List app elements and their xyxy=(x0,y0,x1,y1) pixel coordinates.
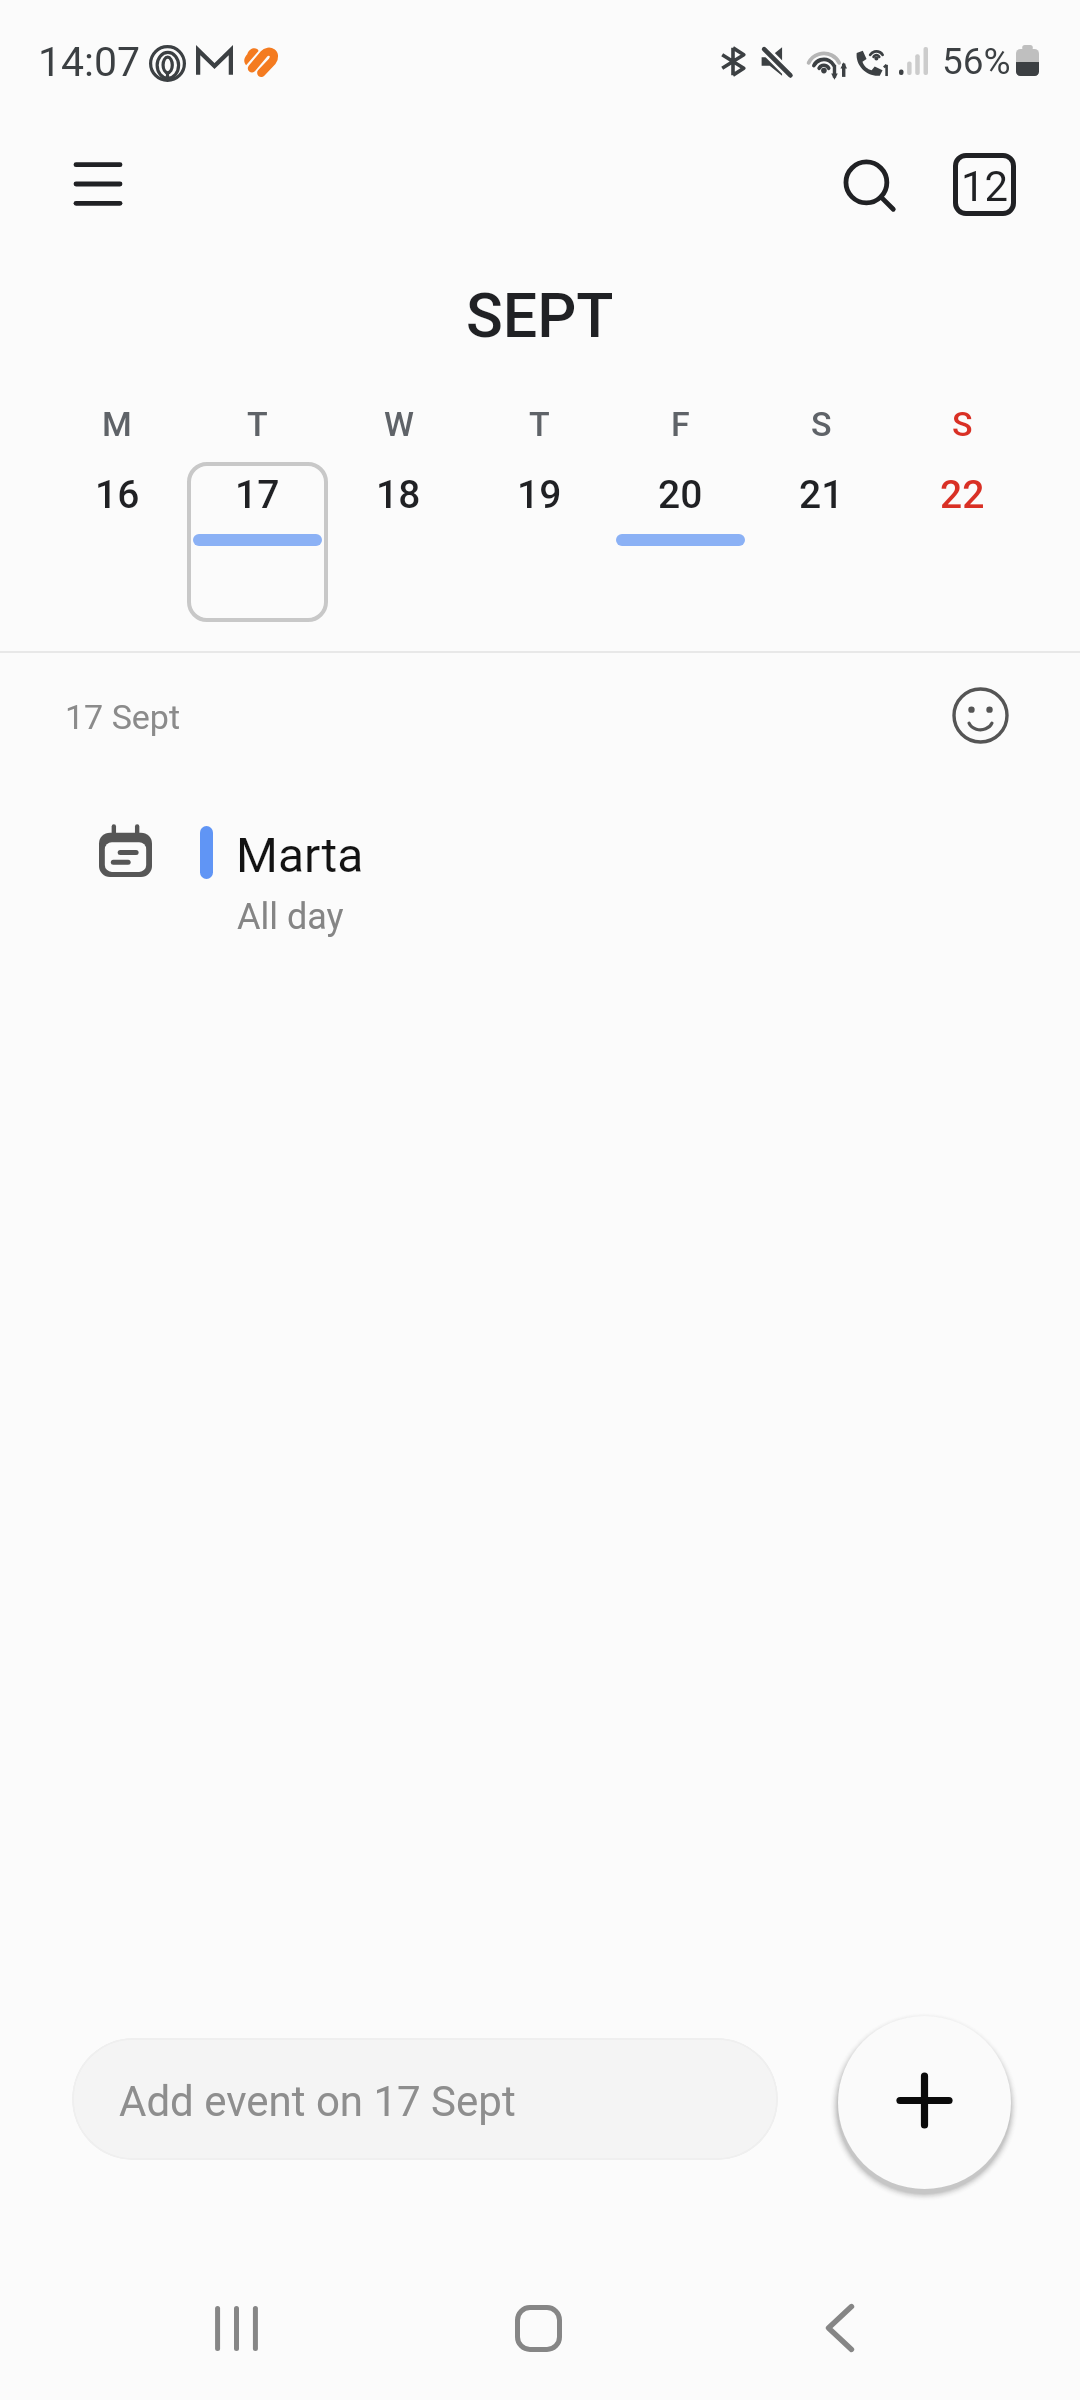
button[interactable]: M xyxy=(47,390,187,640)
button[interactable]: S xyxy=(892,390,1033,640)
button[interactable]: Add event on 17 Sept xyxy=(72,2038,778,2160)
staticText: 18 xyxy=(376,472,421,518)
button[interactable]: S xyxy=(751,390,892,640)
staticText: 17 xyxy=(235,472,280,518)
staticText: SEPT xyxy=(466,280,614,351)
button[interactable]: T xyxy=(469,390,610,640)
staticText: 20 xyxy=(658,472,703,518)
button[interactable]: Stickers xyxy=(934,669,1026,761)
button[interactable]: Home xyxy=(492,2282,584,2374)
staticText: 21 xyxy=(799,472,844,518)
button[interactable]: Open navigation menu xyxy=(51,140,145,228)
staticText: All day xyxy=(237,896,344,938)
staticText: F xyxy=(671,404,690,444)
staticText: 14:07 xyxy=(38,38,141,86)
staticText: S xyxy=(811,404,832,444)
staticText: 12 xyxy=(961,162,1009,211)
button[interactable]: W xyxy=(328,390,469,640)
staticText: 17 Sept xyxy=(65,697,181,737)
staticText: 22 xyxy=(940,472,985,518)
staticText: M xyxy=(102,404,132,444)
button[interactable]: Add event xyxy=(838,2016,1011,2189)
button[interactable]: Marta xyxy=(0,800,1080,960)
staticText: 19 xyxy=(517,472,562,518)
button[interactable]: T xyxy=(187,390,328,640)
staticText: Marta xyxy=(236,827,364,883)
staticText: S xyxy=(952,404,973,444)
staticText: W xyxy=(384,404,414,444)
staticText: 16 xyxy=(95,472,140,518)
button[interactable]: Back xyxy=(794,2282,886,2374)
button[interactable]: Search xyxy=(826,142,918,234)
staticText: T xyxy=(529,404,550,444)
staticText: T xyxy=(247,404,268,444)
button[interactable]: F xyxy=(610,390,751,640)
staticText: Add event on 17 Sept xyxy=(119,2077,516,2126)
button[interactable]: Go to today xyxy=(940,140,1028,228)
staticText: 56% xyxy=(942,40,1011,83)
button[interactable]: Recent apps xyxy=(190,2282,282,2374)
